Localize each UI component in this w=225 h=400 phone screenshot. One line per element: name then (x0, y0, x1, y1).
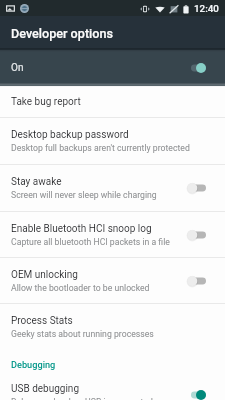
staticText: USB debugging (11, 383, 80, 395)
staticText: Take bug report (11, 96, 81, 108)
button[interactable]: Enable Bluetooth HCI snoop log (0, 212, 225, 257)
staticText: Capture all bluetooth HCI packets in a f… (11, 237, 170, 247)
staticText: OEM unlocking (11, 269, 78, 281)
button[interactable]: Toggle on (185, 385, 211, 400)
button[interactable]: Take bug report (0, 86, 225, 117)
staticText: Geeky stats about running processes (11, 329, 154, 339)
staticText: 12:40 (194, 3, 219, 14)
staticText: Debug mode when USB is connected (11, 397, 153, 400)
button[interactable]: OEM unlocking (0, 258, 225, 303)
button[interactable]: Toggle off (185, 271, 211, 291)
staticText: Desktop backup password (11, 129, 129, 141)
button[interactable]: USB debugging (0, 372, 225, 400)
button[interactable]: On (0, 50, 225, 86)
button[interactable]: Desktop backup password (0, 118, 225, 164)
staticText: Debugging (11, 359, 56, 370)
staticText: Enable Bluetooth HCI snoop log (11, 223, 152, 235)
button[interactable]: Toggle off (185, 178, 211, 198)
button[interactable]: Stay awake (0, 165, 225, 211)
staticText: Screen will never sleep while charging (11, 190, 157, 200)
button[interactable]: Toggle off (185, 225, 211, 245)
staticText: Desktop full backups aren't currently pr… (11, 143, 190, 153)
button[interactable]: Toggle on (185, 58, 211, 78)
staticText: Process Stats (11, 315, 73, 327)
staticText: Allow the bootloader to be unlocked (11, 283, 150, 293)
button[interactable]: Process Stats (0, 304, 225, 349)
staticText: Developer options (11, 26, 113, 41)
staticText: On (11, 62, 24, 74)
staticText: Stay awake (11, 176, 62, 188)
